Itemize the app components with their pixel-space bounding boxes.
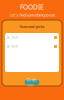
button[interactable]: Order now — [24, 79, 39, 85]
staticText: Item — [11, 36, 17, 39]
staticText: Order now — [26, 77, 37, 87]
staticText: Item — [11, 45, 17, 48]
staticText: Let's find something to eat — [9, 12, 54, 18]
staticText: Seasonal picks — [19, 24, 44, 29]
staticText: FOODIE — [20, 2, 44, 11]
